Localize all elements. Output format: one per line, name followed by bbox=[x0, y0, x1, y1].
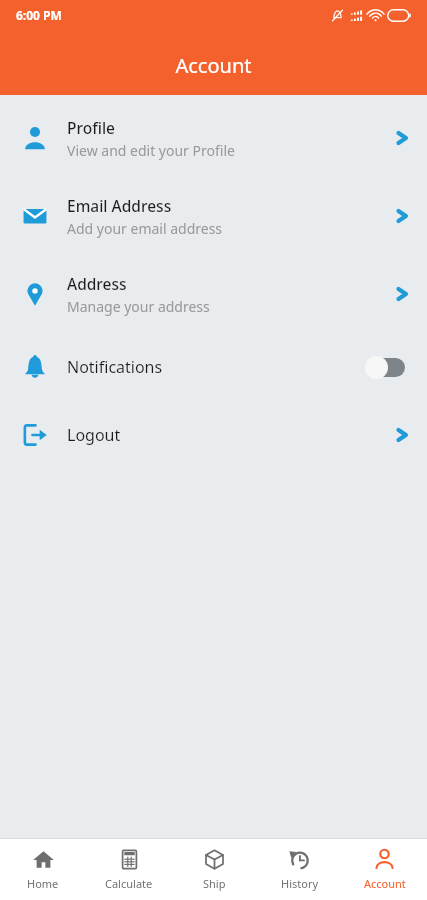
staticText: Calculate bbox=[105, 876, 153, 891]
button[interactable]: Email Address bbox=[0, 187, 427, 245]
staticText: View and edit your Profile bbox=[67, 141, 235, 160]
button[interactable]: Notifications toggle bbox=[365, 354, 409, 380]
button[interactable]: Profile bbox=[0, 109, 427, 167]
staticText: Notifications bbox=[67, 356, 365, 378]
staticText: Manage your address bbox=[67, 297, 210, 316]
staticText: History bbox=[281, 876, 319, 891]
staticText: Add your email address bbox=[67, 219, 223, 238]
button[interactable]: History bbox=[257, 838, 342, 900]
button[interactable]: Home bbox=[0, 838, 86, 900]
staticText: Ship bbox=[203, 876, 226, 891]
button[interactable]: Logout bbox=[0, 413, 427, 457]
staticText: Account bbox=[175, 52, 252, 79]
staticText: Account bbox=[364, 876, 406, 891]
button[interactable]: Address bbox=[0, 265, 427, 323]
staticText: Address bbox=[67, 273, 127, 294]
staticText: Email Address bbox=[67, 195, 172, 216]
button[interactable]: Calculate bbox=[86, 838, 172, 900]
staticText: Logout bbox=[67, 424, 395, 446]
staticText: 6:00 PM bbox=[16, 7, 62, 23]
staticText: Profile bbox=[67, 117, 115, 138]
button[interactable]: Account bbox=[342, 838, 427, 900]
button[interactable]: Ship bbox=[172, 838, 257, 900]
staticText: Home bbox=[27, 876, 59, 891]
button[interactable]: Notifications bbox=[0, 345, 427, 389]
